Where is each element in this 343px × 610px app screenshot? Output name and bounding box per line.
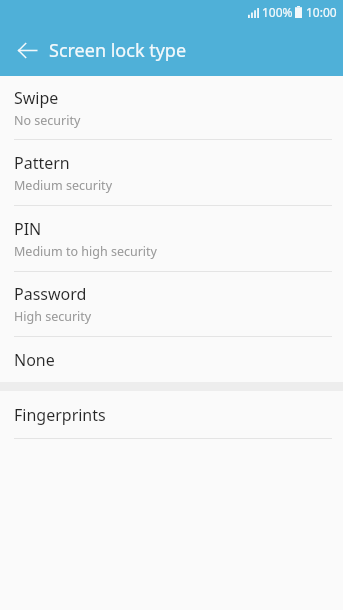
button[interactable]: None <box>0 337 343 382</box>
staticText: 10:00 <box>306 4 337 20</box>
staticText: None <box>14 349 55 371</box>
staticText: Fingerprints <box>14 404 106 426</box>
staticText: Medium security <box>14 177 113 194</box>
staticText: PIN <box>14 218 42 240</box>
staticText: High security <box>14 308 92 325</box>
staticText: Medium to high security <box>14 243 157 260</box>
staticText: Pattern <box>14 152 70 174</box>
staticText: 100% <box>262 4 293 20</box>
button[interactable]: Pattern <box>0 140 343 205</box>
staticText: Swipe <box>14 87 59 109</box>
button[interactable]: Navigate up <box>10 33 44 67</box>
button[interactable]: PIN <box>0 206 343 271</box>
staticText: Password <box>14 283 87 305</box>
button[interactable]: Password <box>0 272 343 336</box>
button[interactable]: Swipe <box>0 76 343 139</box>
staticText: Screen lock type <box>49 38 187 63</box>
button[interactable]: Fingerprints <box>0 391 343 438</box>
staticText: No security <box>14 112 81 129</box>
